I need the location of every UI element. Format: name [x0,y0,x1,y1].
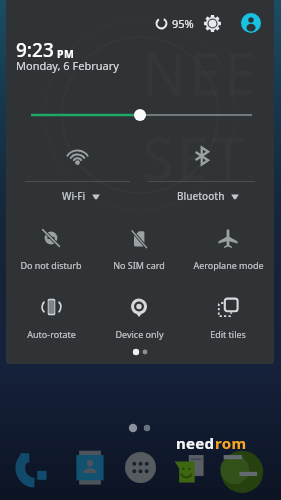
button[interactable]: Settings [200,11,225,36]
staticText: Wi-Fi [62,189,86,203]
staticText: Do not disturb [20,259,82,271]
button[interactable]: Auto-rotate [7,292,95,340]
button[interactable]: Bluetooth [139,130,272,208]
staticText: Bluetooth [177,189,225,203]
button[interactable]: User profile [239,11,262,34]
button[interactable]: Wi-Fi [6,130,140,208]
staticText: Auto-rotate [27,328,76,340]
staticText: Aeroplane mode [193,259,264,271]
staticText: PM [57,47,75,61]
button[interactable]: Brightness [6,104,274,126]
staticText: 95% [172,16,194,31]
button[interactable]: Messages [161,446,217,500]
staticText: SET [142,118,248,197]
staticText: 9:23 [16,37,54,63]
button[interactable]: Device only [95,292,183,340]
staticText: NEE [142,33,260,112]
button[interactable]: Aeroplane mode [184,223,272,271]
button[interactable]: Apps [112,446,169,500]
button[interactable]: Battery 95 percent [155,12,194,34]
staticText: Monday, 6 February [16,58,119,73]
staticText: rom [215,433,247,453]
button[interactable]: Phone [7,446,63,500]
button[interactable]: Do not disturb [7,223,95,271]
staticText: Device only [115,328,164,340]
staticText: need [176,433,215,453]
button[interactable]: Edit tiles [184,292,272,340]
staticText: Edit tiles [210,328,246,340]
staticText: No SIM card [113,259,165,271]
button[interactable]: No SIM card [95,223,183,271]
button[interactable]: Browser [215,446,271,500]
button[interactable]: Contacts [62,446,118,500]
